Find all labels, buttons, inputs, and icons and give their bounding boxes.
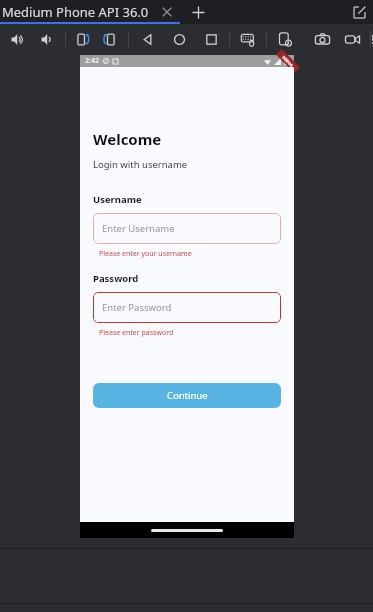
button[interactable]: Keyboard input [237, 28, 259, 50]
staticText: 2:42 [85, 56, 99, 66]
button[interactable]: Enter Username [93, 213, 281, 244]
staticText: Please enter password [99, 328, 174, 338]
button[interactable]: Continue [93, 383, 281, 408]
staticText: DEBUG [281, 55, 294, 68]
staticText: Username [93, 193, 142, 206]
button[interactable]: Volume down [36, 28, 58, 50]
button[interactable]: Back [136, 28, 158, 50]
staticText: Welcome [93, 129, 162, 149]
button[interactable]: Overview [200, 28, 222, 50]
button[interactable]: Home gesture [151, 529, 223, 532]
button[interactable]: Record screen [341, 28, 363, 50]
staticText: Enter Username [102, 222, 175, 235]
button[interactable]: Close tab [159, 4, 175, 20]
button[interactable]: Open in separate window [349, 2, 369, 22]
button[interactable]: Volume up [6, 28, 28, 50]
button[interactable]: Home [168, 28, 190, 50]
button[interactable]: Rotate right [99, 28, 121, 50]
button[interactable]: Screenshot [311, 28, 333, 50]
button[interactable]: Rotate left [73, 28, 95, 50]
button[interactable]: Enter Password [93, 292, 281, 323]
staticText: Medium Phone API 36.0 [2, 3, 149, 21]
staticText: Enter Password [102, 301, 172, 314]
button[interactable]: Device settings [274, 28, 296, 50]
staticText: Password [93, 272, 139, 285]
staticText: Login with username [93, 158, 188, 171]
button[interactable]: New tab [189, 3, 207, 21]
staticText: Continue [167, 389, 208, 402]
staticText: Please enter your username [99, 249, 192, 259]
